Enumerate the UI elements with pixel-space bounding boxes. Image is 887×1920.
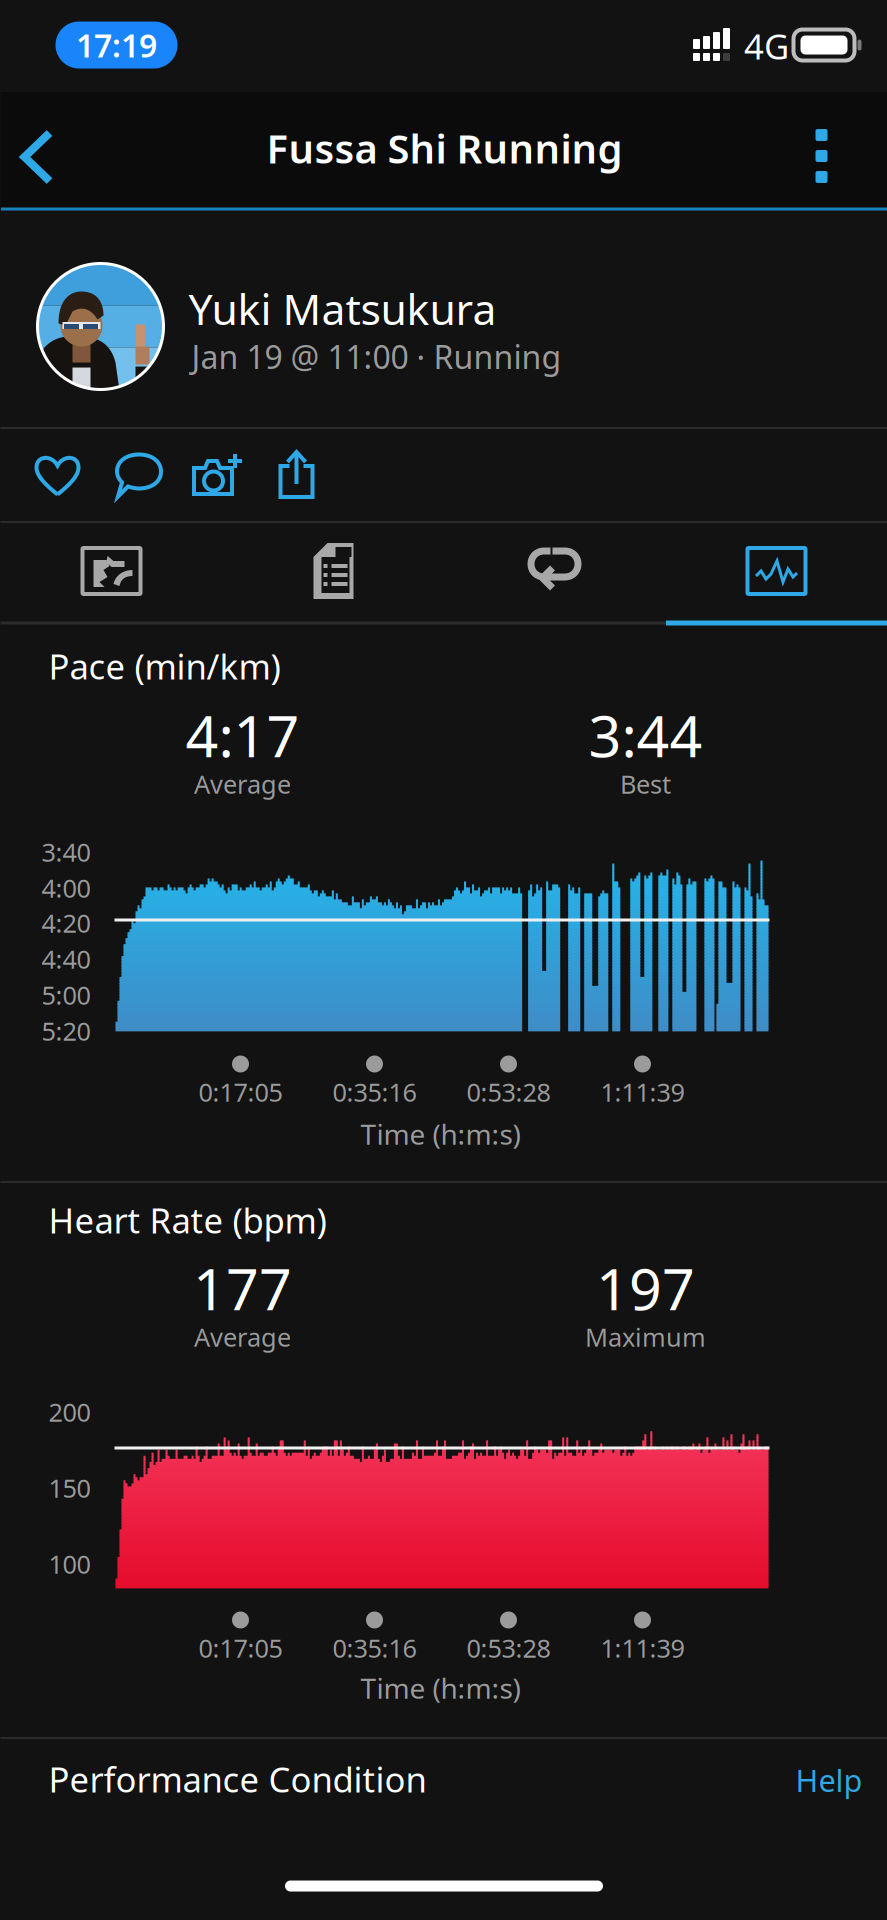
- staticText: 5:00: [41, 978, 90, 1012]
- staticText: Average: [194, 1320, 291, 1354]
- staticText: 4:00: [41, 871, 90, 905]
- staticText: 5:20: [41, 1014, 90, 1048]
- staticText: 0:53:28: [466, 1631, 550, 1665]
- staticText: 17:19: [76, 24, 157, 66]
- button[interactable]: More options: [779, 110, 863, 202]
- staticText: 177: [193, 1250, 292, 1326]
- staticText: Average: [194, 767, 291, 801]
- button[interactable]: Add photo: [177, 428, 257, 522]
- staticText: 3:44: [588, 697, 702, 773]
- button[interactable]: Share: [256, 428, 336, 522]
- button[interactable]: Performance Condition: [0, 1738, 887, 1832]
- button[interactable]: Back: [0, 111, 78, 203]
- staticText: Jan 19 @ 11:00 · Running: [191, 335, 561, 378]
- button[interactable]: Map: [0, 521, 222, 621]
- staticText: 4G: [744, 23, 789, 69]
- staticText: Time (h:m:s): [360, 1115, 520, 1153]
- staticText: Performance Condition: [48, 1756, 426, 1802]
- button[interactable]: Details: [222, 521, 444, 621]
- staticText: 1:11:39: [600, 1631, 684, 1665]
- staticText: 0:35:16: [332, 1075, 416, 1109]
- button[interactable]: Yuki Matsukura: [0, 209, 887, 426]
- staticText: Best: [620, 767, 671, 801]
- button[interactable]: Laps: [443, 521, 665, 621]
- button[interactable]: Comment: [99, 428, 179, 522]
- staticText: 1:11:39: [600, 1075, 684, 1109]
- staticText: Help: [795, 1760, 862, 1800]
- staticText: 4:17: [185, 697, 299, 773]
- staticText: Maximum: [585, 1320, 706, 1354]
- staticText: 100: [48, 1547, 90, 1581]
- staticText: Heart Rate (bpm): [48, 1197, 326, 1243]
- staticText: 0:35:16: [332, 1631, 416, 1665]
- staticText: 150: [48, 1471, 90, 1505]
- staticText: 4:40: [41, 942, 90, 976]
- staticText: Fussa Shi Running: [266, 121, 622, 174]
- button[interactable]: Like: [17, 428, 97, 522]
- staticText: 3:40: [41, 835, 90, 869]
- staticText: 197: [596, 1250, 695, 1326]
- staticText: 0:53:28: [466, 1075, 550, 1109]
- staticText: Time (h:m:s): [360, 1669, 520, 1707]
- staticText: 0:17:05: [198, 1075, 282, 1109]
- staticText: Pace (min/km): [48, 643, 280, 689]
- staticText: 200: [48, 1395, 90, 1429]
- staticText: Yuki Matsukura: [188, 280, 496, 337]
- staticText: 0:17:05: [198, 1631, 282, 1665]
- staticText: 4:20: [41, 906, 90, 940]
- button[interactable]: Charts: [666, 521, 887, 621]
